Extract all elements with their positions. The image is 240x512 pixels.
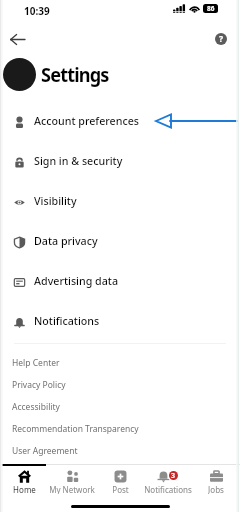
button[interactable]: 3 xyxy=(144,464,192,494)
button[interactable]: My Network xyxy=(48,464,96,494)
button[interactable]: Visibility xyxy=(0,182,240,222)
staticText: Visibility xyxy=(34,194,77,209)
staticText: User Agreement xyxy=(12,445,78,457)
button[interactable]: Data privacy xyxy=(0,222,240,262)
button[interactable]: Notifications xyxy=(0,302,240,342)
button[interactable]: Home xyxy=(0,464,48,494)
staticText: My Network xyxy=(49,484,95,494)
button[interactable]: Help Center xyxy=(0,352,240,373)
button[interactable]: Advertising data xyxy=(0,262,240,302)
button[interactable]: Accessibility xyxy=(0,396,240,417)
button[interactable]: Privacy Policy xyxy=(0,374,240,395)
button[interactable]: Post xyxy=(96,464,144,494)
button[interactable]: Back xyxy=(5,28,29,50)
button[interactable]: Profile photo xyxy=(3,58,36,91)
button[interactable]: Account preferences xyxy=(0,102,240,142)
staticText: Settings xyxy=(41,61,109,88)
staticText: Home xyxy=(13,484,36,494)
staticText: Sign in & security xyxy=(34,154,123,169)
staticText: ? xyxy=(219,33,224,45)
button[interactable]: Help xyxy=(210,28,232,50)
staticText: Notifications xyxy=(144,484,192,494)
staticText: Advertising data xyxy=(34,274,119,289)
button[interactable]: Recommendation Transparency xyxy=(0,418,240,439)
button[interactable]: User Agreement xyxy=(0,440,240,461)
staticText: Notifications xyxy=(34,314,100,329)
staticText: Privacy Policy xyxy=(12,379,66,391)
staticText: Account preferences xyxy=(34,114,140,129)
staticText: 86 xyxy=(207,4,215,13)
button[interactable]: Sign in & security xyxy=(0,142,240,182)
staticText: 10:39 xyxy=(24,4,50,18)
staticText: Help Center xyxy=(12,357,60,369)
staticText: Post xyxy=(112,484,129,494)
staticText: 3 xyxy=(171,471,176,480)
staticText: Accessibility xyxy=(12,401,60,413)
staticText: Jobs xyxy=(208,484,224,494)
button[interactable]: Jobs xyxy=(192,464,240,494)
staticText: Data privacy xyxy=(34,234,98,249)
staticText: Recommendation Transparency xyxy=(12,423,139,435)
